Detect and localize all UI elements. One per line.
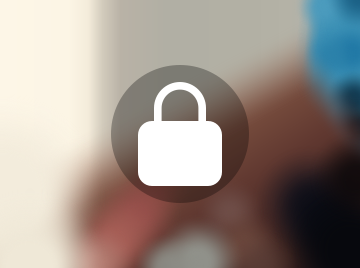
button[interactable]: Locked [111, 65, 249, 203]
